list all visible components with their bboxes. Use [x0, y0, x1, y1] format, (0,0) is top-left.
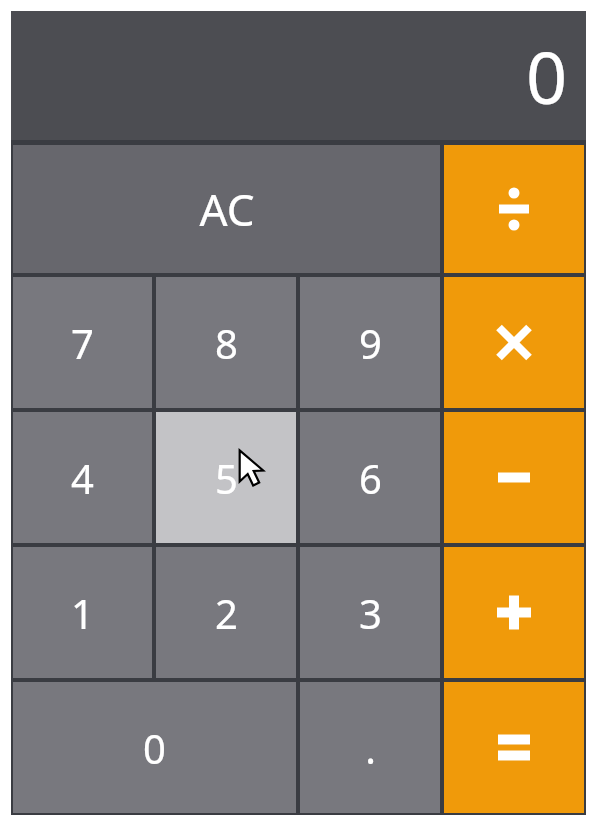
staticText: 3: [359, 586, 382, 640]
staticText: 0: [526, 27, 568, 125]
button[interactable]: Equals: [444, 682, 584, 813]
button[interactable]: 8: [156, 277, 296, 408]
button[interactable]: 9: [300, 277, 440, 408]
button[interactable]: 1: [13, 547, 152, 678]
button[interactable]: 7: [13, 277, 152, 408]
button[interactable]: 3: [300, 547, 440, 678]
button[interactable]: 4: [13, 412, 152, 543]
staticText: 1: [71, 586, 94, 640]
button[interactable]: 5: [156, 412, 296, 543]
staticText: 0: [143, 721, 166, 775]
button[interactable]: 0: [13, 682, 296, 813]
button[interactable]: 2: [156, 547, 296, 678]
staticText: 4: [71, 451, 94, 505]
button[interactable]: Minus: [444, 412, 584, 543]
button[interactable]: AC: [13, 145, 440, 273]
button[interactable]: Plus: [444, 547, 584, 678]
staticText: 9: [359, 316, 382, 370]
staticText: 6: [359, 451, 382, 505]
button[interactable]: Divide: [444, 145, 584, 273]
button[interactable]: .: [300, 682, 440, 813]
staticText: 5: [215, 451, 238, 505]
staticText: 8: [215, 316, 238, 370]
staticText: .: [365, 721, 376, 775]
staticText: AC: [199, 179, 255, 239]
button[interactable]: 6: [300, 412, 440, 543]
staticText: 2: [215, 586, 238, 640]
button[interactable]: Multiply: [444, 277, 584, 408]
staticText: 7: [71, 316, 94, 370]
